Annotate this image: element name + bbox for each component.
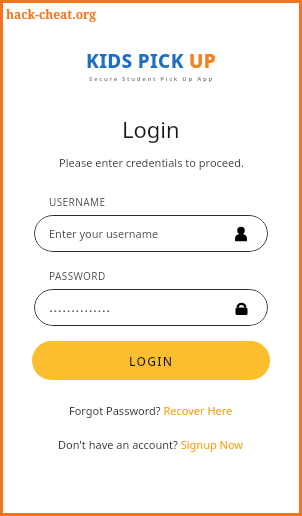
staticText: Don't have an account? Signup Now bbox=[58, 437, 244, 452]
button[interactable]: Forgot Password? Recover Here bbox=[59, 400, 243, 421]
other: Password field bbox=[229, 296, 253, 320]
staticText: hack-cheat.org bbox=[6, 6, 97, 22]
button[interactable]: LOGIN bbox=[32, 341, 270, 380]
staticText: Enter your username bbox=[49, 226, 159, 241]
staticText: USERNAME bbox=[49, 195, 106, 209]
staticText: Login bbox=[122, 114, 180, 144]
button[interactable]: Password field bbox=[34, 289, 268, 326]
staticText: UP bbox=[189, 48, 216, 74]
staticText: Please enter credentials to proceed. bbox=[59, 155, 244, 170]
button[interactable]: Don't have an account? Signup Now bbox=[48, 434, 254, 455]
staticText: Secure Student Pick Up App bbox=[89, 75, 214, 83]
staticText: Forgot Password? Recover Here bbox=[69, 403, 233, 418]
other: Username field bbox=[229, 222, 253, 246]
staticText: KIDS PICK bbox=[86, 48, 189, 74]
staticText: PASSWORD bbox=[49, 269, 106, 283]
button[interactable]: Enter your username bbox=[34, 215, 268, 252]
staticText: LOGIN bbox=[129, 353, 174, 369]
